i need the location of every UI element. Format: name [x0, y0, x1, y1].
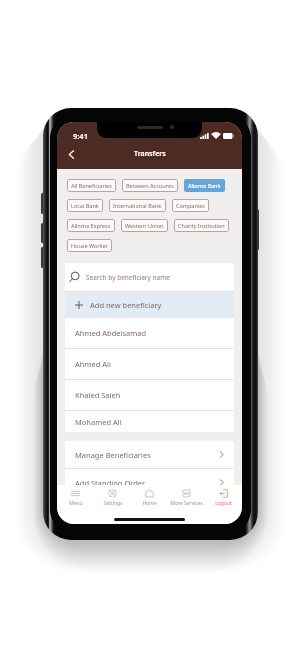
button[interactable]: Western Union	[121, 219, 168, 232]
staticText: House Worker	[71, 242, 108, 249]
staticText: Khaled Saleh	[75, 390, 121, 400]
button[interactable]: Local Bank	[67, 199, 103, 212]
staticText: Ahmed Ali	[75, 359, 111, 369]
staticText: More Services	[170, 500, 203, 507]
button[interactable]: Settings	[94, 485, 131, 510]
staticText: Menu	[69, 500, 83, 507]
staticText: 9:41	[73, 131, 88, 141]
staticText: Manage Beneficiaries	[75, 450, 151, 460]
staticText: Companies	[176, 202, 205, 209]
button[interactable]: Alinma Bank	[184, 179, 225, 192]
button[interactable]: Alinma Express	[67, 219, 115, 232]
button[interactable]: Manage Beneficiaries	[65, 441, 234, 468]
button[interactable]: Logout	[205, 485, 242, 510]
staticText: Western Union	[125, 222, 164, 229]
staticText: Transfers	[134, 149, 166, 159]
button[interactable]: Ahmed Abdelsamad	[65, 318, 234, 348]
button[interactable]: International Bank	[109, 199, 166, 212]
staticText: Alinma Bank	[188, 182, 221, 189]
button[interactable]: All Beneficiaries	[67, 179, 116, 192]
button[interactable]: Menu	[57, 485, 94, 510]
staticText: Add new beneficiary	[90, 300, 162, 310]
button[interactable]: More Services	[168, 485, 205, 510]
staticText: Ahmed Abdelsamad	[75, 328, 147, 338]
button[interactable]: Ahmed Ali	[65, 349, 234, 379]
staticText: Charity Institution	[178, 222, 225, 229]
button[interactable]: Khaled Saleh	[65, 380, 234, 410]
button[interactable]: Between Accounts	[122, 179, 178, 192]
staticText: Add Standing Order	[75, 478, 146, 488]
staticText: International Bank	[113, 202, 162, 209]
button[interactable]: Home	[131, 485, 168, 510]
staticText: Mohamed Ali	[75, 417, 122, 427]
staticText: Alinma Express	[71, 222, 111, 229]
button[interactable]: Add Standing Order	[65, 469, 234, 496]
button[interactable]: Companies	[172, 199, 209, 212]
button[interactable]: Charity Institution	[174, 219, 229, 232]
button[interactable]: Mohamed Ali	[65, 411, 234, 432]
staticText: Search by beneficiary name	[86, 273, 170, 282]
staticText: Logout	[215, 500, 232, 507]
staticText: Settings	[103, 500, 123, 507]
button[interactable]: Back	[61, 144, 81, 164]
staticText: All Beneficiaries	[71, 182, 112, 189]
staticText: Home	[142, 500, 157, 507]
staticText: Between Accounts	[126, 182, 174, 189]
button[interactable]: House Worker	[67, 239, 112, 252]
button[interactable]: Add new beneficiary	[65, 292, 234, 318]
staticText: Local Bank	[71, 202, 99, 209]
button[interactable]: Search by beneficiary name	[65, 263, 234, 291]
